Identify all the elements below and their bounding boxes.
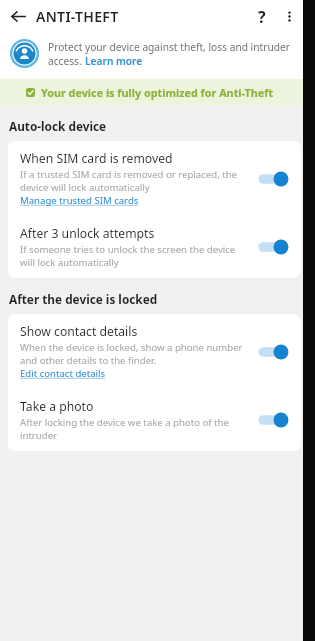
staticText: Manage trusted SIM cards [20,194,139,207]
staticText: ? [258,6,266,28]
button[interactable]: Toggle After 3 unlock attempts [257,236,293,258]
staticText: After 3 unlock attempts [20,225,155,242]
button[interactable]: Manage trusted SIM cards [20,194,139,207]
button[interactable]: Take a photo [8,389,301,451]
button[interactable]: More options [277,0,301,33]
staticText: When the device is locked, show a phone … [20,341,251,367]
button[interactable]: Toggle When SIM card is removed [257,168,293,190]
button[interactable]: After 3 unlock attempts [8,216,301,278]
staticText: access. [48,54,85,68]
staticText: If someone tries to unlock the screen th… [20,243,251,269]
staticText: Your device is fully optimized for Anti-… [41,85,274,100]
staticText: After locking the device we take a photo… [20,416,251,442]
button[interactable]: Help [247,0,277,33]
staticText: Auto-lock device [9,118,107,134]
staticText: If a trusted SIM card is removed or repl… [20,168,251,194]
staticText: Take a photo [20,398,94,415]
staticText: ANTI-THEFT [36,7,119,26]
button[interactable]: Edit contact details [20,367,106,380]
staticText: After the device is locked [9,291,158,307]
staticText: Show contact details [20,323,138,340]
button[interactable]: Toggle Take a photo [257,409,293,431]
staticText: Edit contact details [20,367,106,380]
staticText: Learn more [85,54,143,68]
button[interactable]: Show contact details [8,314,301,389]
staticText: Protect your device against theft, loss … [48,40,290,54]
button[interactable]: Learn more [85,54,143,68]
staticText: When SIM card is removed [20,150,173,167]
button[interactable]: Toggle Show contact details [257,341,293,363]
button[interactable]: Back [0,0,36,33]
button[interactable]: When SIM card is removed [8,141,301,216]
